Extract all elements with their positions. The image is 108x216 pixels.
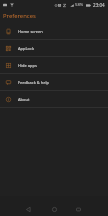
staticText: Home screen: [18, 29, 43, 34]
button[interactable]: Home: [48, 203, 60, 215]
staticText: 23:04: [93, 2, 105, 8]
staticText: Preferences: [3, 12, 36, 20]
staticText: Feedback & help: [18, 80, 50, 85]
staticText: About: [18, 97, 30, 102]
staticText: 58%: [75, 2, 84, 8]
button[interactable]: About: [0, 91, 108, 107]
staticText: AppLock: [18, 46, 35, 51]
button[interactable]: AppLock: [0, 40, 108, 56]
staticText: Hide apps: [18, 63, 37, 68]
button[interactable]: Home screen: [0, 23, 108, 39]
button[interactable]: Feedback & help: [0, 74, 108, 90]
button[interactable]: Back: [22, 203, 34, 215]
button[interactable]: Recents: [72, 203, 84, 215]
button[interactable]: Hide apps: [0, 57, 108, 73]
